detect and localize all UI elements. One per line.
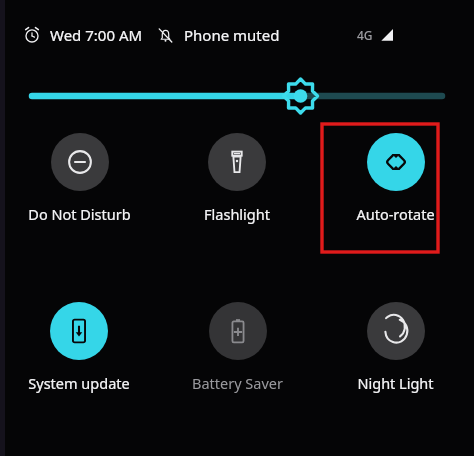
staticText: Auto-rotate xyxy=(356,204,435,224)
staticText: Phone muted xyxy=(184,25,280,45)
button[interactable]: Auto-rotate xyxy=(356,133,435,224)
button[interactable]: Flashlight xyxy=(204,133,270,224)
button[interactable]: Battery Saver xyxy=(192,302,283,393)
button[interactable]: Do Not Disturb xyxy=(28,133,131,224)
button[interactable]: Brightness xyxy=(0,76,474,116)
staticText: System update xyxy=(28,373,130,393)
staticText: 4G xyxy=(357,27,373,43)
button[interactable]: Night Light xyxy=(357,302,434,393)
staticText: Battery Saver xyxy=(192,373,283,393)
staticText: Flashlight xyxy=(204,204,270,224)
staticText: Wed 7:00 AM xyxy=(50,25,143,45)
button[interactable]: System update xyxy=(28,302,130,393)
staticText: Do Not Disturb xyxy=(28,204,131,224)
staticText: Night Light xyxy=(357,373,434,393)
